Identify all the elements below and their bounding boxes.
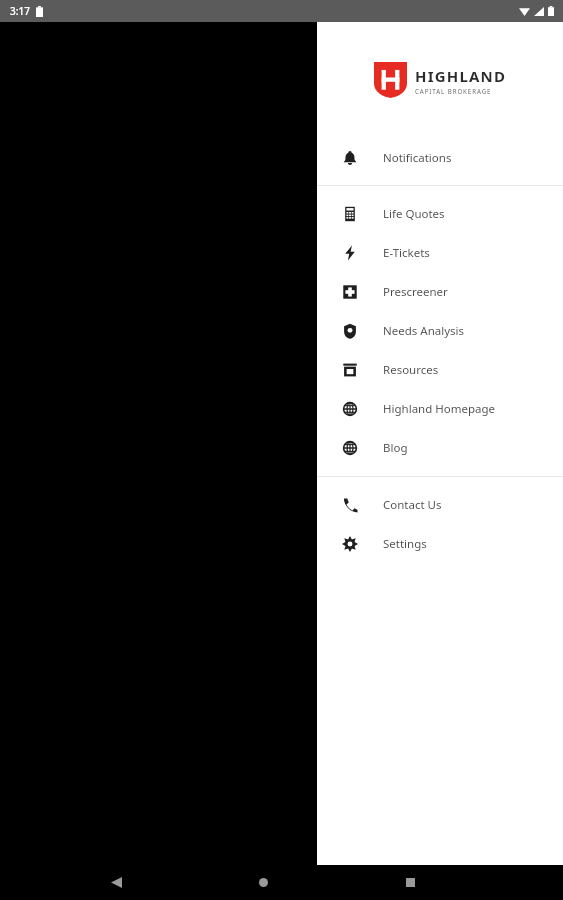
button[interactable]: Highland Homepage xyxy=(317,389,563,428)
button[interactable]: Settings xyxy=(317,524,563,563)
staticText: CAPITAL BROKERAGE xyxy=(415,87,492,95)
button[interactable]: Needs Analysis xyxy=(317,311,563,350)
staticText: HIGHLAND xyxy=(415,66,507,86)
staticText: Highland Homepage xyxy=(383,401,496,417)
button[interactable]: Resources xyxy=(317,350,563,389)
staticText: Life Quotes xyxy=(383,206,445,222)
staticText: Resources xyxy=(383,362,439,378)
button[interactable]: E-Tickets xyxy=(317,233,563,272)
button[interactable]: Notifications xyxy=(317,138,563,177)
staticText: Contact Us xyxy=(383,497,442,513)
button[interactable]: Life Quotes xyxy=(317,194,563,233)
staticText: E-Tickets xyxy=(383,245,430,261)
button[interactable]: Prescreener xyxy=(317,272,563,311)
staticText: Prescreener xyxy=(383,284,448,300)
button[interactable]: Blog xyxy=(317,428,563,467)
button[interactable]: Contact Us xyxy=(317,485,563,524)
staticText: Needs Analysis xyxy=(383,323,465,339)
button[interactable]: Recent apps xyxy=(388,865,432,900)
button[interactable]: Back xyxy=(94,865,138,900)
button[interactable]: Home xyxy=(241,865,285,900)
staticText: Blog xyxy=(383,440,408,456)
staticText: Notifications xyxy=(383,150,452,166)
staticText: 3:17 xyxy=(10,4,30,18)
staticText: Settings xyxy=(383,536,427,552)
